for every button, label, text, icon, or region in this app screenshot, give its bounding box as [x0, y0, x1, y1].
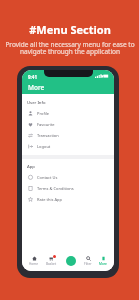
staticText: Terms & Conditions	[37, 186, 74, 191]
button[interactable]: Rate this App	[22, 194, 114, 205]
button[interactable]: Contact Us	[22, 172, 114, 183]
staticText: Filter	[84, 262, 92, 266]
staticText: Basket	[46, 262, 57, 266]
button[interactable]: Add	[66, 256, 76, 266]
staticText: 9:41	[28, 74, 37, 80]
staticText: Favourite	[37, 122, 55, 127]
button[interactable]: Home	[29, 256, 39, 266]
button[interactable]: Transaction	[22, 130, 114, 141]
button[interactable]: Basket	[46, 256, 57, 266]
staticText: More	[99, 262, 107, 266]
button[interactable]: Filter	[84, 256, 92, 266]
staticText: Rate this App	[37, 197, 62, 202]
staticText: Contact Us	[37, 175, 58, 180]
staticText: Logout	[37, 144, 51, 149]
button[interactable]: Logout	[22, 141, 114, 152]
staticText: #Menu Section	[29, 22, 111, 37]
staticText: More	[28, 83, 45, 92]
staticText: Home	[29, 262, 39, 266]
staticText: Provide all the necessary menu for ease …	[5, 40, 135, 56]
staticText: User Info	[27, 100, 46, 106]
staticText: Profile	[37, 111, 50, 116]
staticText: App	[27, 164, 35, 170]
button[interactable]: More	[99, 256, 107, 266]
button[interactable]: Terms & Conditions	[22, 183, 114, 194]
staticText: Transaction	[37, 133, 59, 138]
button[interactable]: Favourite	[22, 119, 114, 130]
button[interactable]: Profile	[22, 108, 114, 119]
